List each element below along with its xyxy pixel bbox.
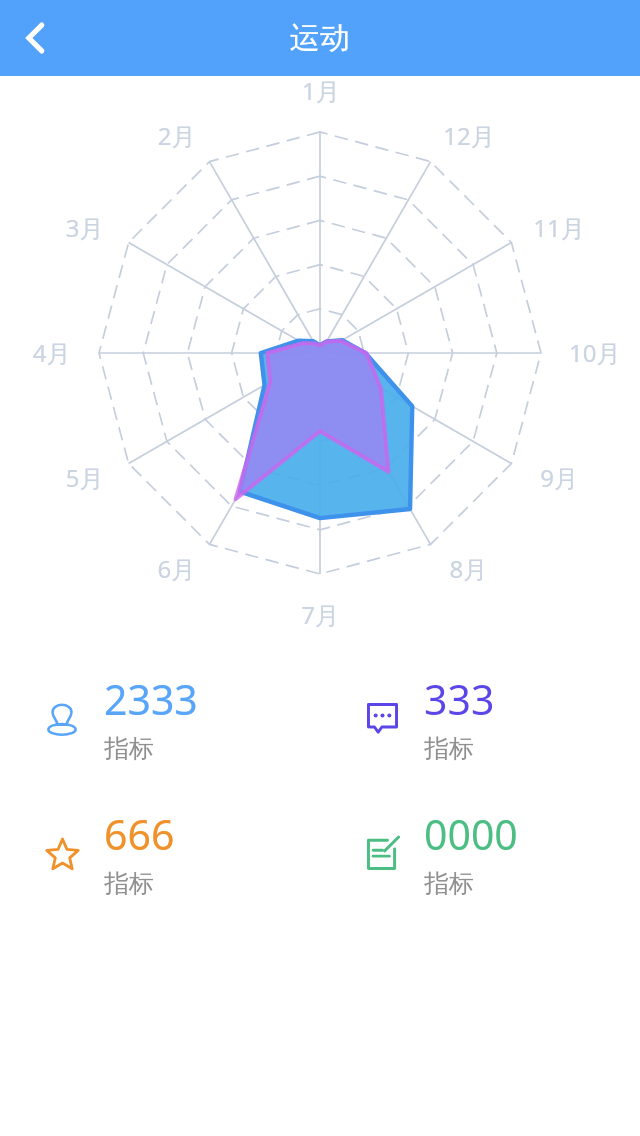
staticText: 指标: [104, 868, 154, 899]
button[interactable]: 0000: [320, 806, 640, 899]
staticText: 666: [104, 806, 175, 862]
staticText: 0000: [424, 806, 518, 862]
button[interactable]: Back: [0, 2, 72, 74]
staticText: 指标: [424, 868, 474, 899]
staticText: 指标: [424, 733, 474, 764]
button[interactable]: 666: [0, 806, 320, 899]
staticText: 指标: [104, 733, 154, 764]
staticText: 运动: [290, 19, 350, 57]
staticText: 333: [424, 671, 495, 727]
button[interactable]: 2333: [0, 671, 320, 764]
staticText: 2333: [104, 671, 198, 727]
button[interactable]: 333: [320, 671, 640, 764]
